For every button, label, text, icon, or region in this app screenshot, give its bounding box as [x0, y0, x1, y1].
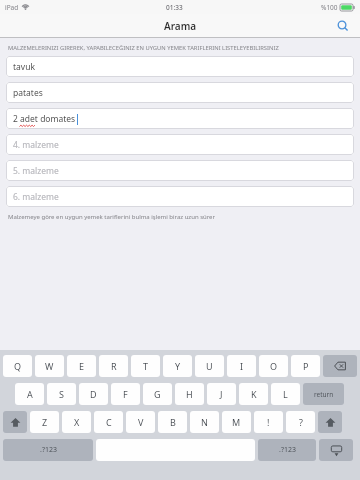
staticText: L — [283, 388, 288, 400]
button[interactable]: Q — [3, 355, 32, 377]
staticText: S — [59, 388, 64, 400]
staticText: 01:33 — [166, 3, 183, 12]
button[interactable]: R — [99, 355, 128, 377]
staticText: Y — [175, 360, 181, 372]
button[interactable]: Sil — [323, 355, 357, 377]
button[interactable]: W — [35, 355, 64, 377]
staticText: Q — [14, 360, 22, 372]
button[interactable]: 6. malzeme — [6, 186, 354, 207]
button[interactable]: V — [126, 411, 155, 433]
button[interactable]: 4. malzeme — [6, 134, 354, 155]
button[interactable]: return — [303, 383, 344, 405]
staticText: T — [143, 360, 149, 372]
staticText: C — [106, 416, 112, 428]
staticText: B — [170, 416, 176, 428]
staticText: Malzemeye göre en uygun yemek tariflerin… — [8, 213, 215, 221]
staticText: I — [240, 360, 244, 372]
button[interactable]: G — [143, 383, 172, 405]
button[interactable]: 2 adet domates — [6, 108, 354, 129]
staticText: %100 — [321, 3, 338, 12]
button[interactable]: Z — [30, 411, 59, 433]
button[interactable]: M — [222, 411, 251, 433]
button[interactable]: N — [190, 411, 219, 433]
button[interactable]: C — [94, 411, 123, 433]
staticText: V — [138, 416, 144, 428]
staticText: .?123 — [279, 445, 296, 455]
staticText: G — [154, 388, 161, 400]
button[interactable]: O — [259, 355, 288, 377]
staticText: 6. malzeme — [13, 191, 59, 203]
button[interactable]: F — [111, 383, 140, 405]
button[interactable]: tavuk — [6, 56, 354, 77]
button[interactable]: J — [207, 383, 236, 405]
button[interactable]: B — [158, 411, 187, 433]
button[interactable]: .?123 — [258, 439, 316, 461]
staticText: U — [206, 360, 213, 372]
button[interactable]: Klavyeyi kapat — [319, 439, 353, 461]
staticText: .?123 — [40, 445, 57, 455]
button[interactable]: .?123 — [3, 439, 93, 461]
button[interactable]: K — [239, 383, 268, 405]
button[interactable]: Shift — [3, 411, 27, 433]
staticText: Arama — [164, 19, 197, 33]
button[interactable]: E — [67, 355, 96, 377]
staticText: X — [74, 416, 80, 428]
staticText: iPad — [5, 3, 19, 12]
staticText: Z — [42, 416, 48, 428]
button[interactable]: Y — [163, 355, 192, 377]
button[interactable]: 5. malzeme — [6, 160, 354, 181]
staticText: patates — [13, 87, 43, 99]
button[interactable]: patates — [6, 82, 354, 103]
button[interactable]: D — [79, 383, 108, 405]
button[interactable]: ? — [286, 411, 315, 433]
staticText: K — [251, 388, 257, 400]
staticText: M — [232, 416, 241, 428]
button[interactable]: A — [15, 383, 44, 405]
button[interactable]: S — [47, 383, 76, 405]
button[interactable]: P — [291, 355, 320, 377]
button[interactable]: I — [227, 355, 256, 377]
staticText: O — [270, 360, 278, 372]
staticText: H — [186, 388, 193, 400]
staticText: D — [90, 388, 97, 400]
staticText: 5. malzeme — [13, 165, 59, 177]
staticText: W — [45, 360, 54, 372]
staticText: E — [79, 360, 85, 372]
staticText: R — [111, 360, 117, 372]
button[interactable]: Shift — [318, 411, 342, 433]
staticText: F — [123, 388, 128, 400]
button[interactable]: U — [195, 355, 224, 377]
staticText: 4. malzeme — [13, 139, 59, 151]
staticText: ! — [267, 416, 270, 428]
button[interactable]: L — [271, 383, 300, 405]
staticText: A — [27, 388, 33, 400]
staticText: J — [220, 388, 223, 400]
staticText: P — [303, 360, 309, 372]
staticText: tavuk — [13, 61, 35, 73]
button[interactable]: ! — [254, 411, 283, 433]
staticText: return — [314, 390, 334, 399]
button[interactable]: H — [175, 383, 204, 405]
staticText: MALZEMELERINIZI GIREREK, YAPABILECEĞINIZ… — [8, 44, 279, 52]
button[interactable]: Ara — [334, 17, 352, 35]
staticText: N — [201, 416, 208, 428]
staticText: 2 adet domates — [13, 113, 76, 125]
button[interactable]: T — [131, 355, 160, 377]
staticText: ? — [299, 416, 303, 428]
button[interactable]: X — [62, 411, 91, 433]
